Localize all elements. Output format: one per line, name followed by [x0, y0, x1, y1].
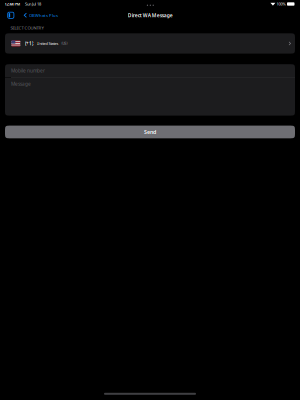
staticText: 100%	[277, 1, 286, 7]
staticText: (+1)	[25, 40, 33, 47]
staticText: Mobile number	[11, 67, 45, 74]
staticText: OBWhats Plus	[29, 12, 58, 18]
button[interactable]: Show sidebar	[5, 10, 16, 21]
staticText: (US)	[61, 41, 67, 46]
button[interactable]: Multitasking controls	[143, 3, 158, 8]
staticText: Sun Jul 18	[25, 1, 41, 7]
button[interactable]: Send	[5, 126, 295, 138]
staticText: SELECT COUNTRY	[10, 25, 43, 31]
button[interactable]: OBWhats Plus	[22, 10, 59, 21]
staticText: Direct WA Message	[128, 12, 173, 19]
button[interactable]: (+1)	[5, 33, 295, 54]
staticText: 12:44 PM	[4, 1, 20, 7]
staticText: Message	[11, 80, 31, 87]
staticText: United States	[36, 41, 58, 46]
button[interactable]: Mobile number	[5, 64, 295, 77]
staticText: Send	[144, 128, 156, 136]
